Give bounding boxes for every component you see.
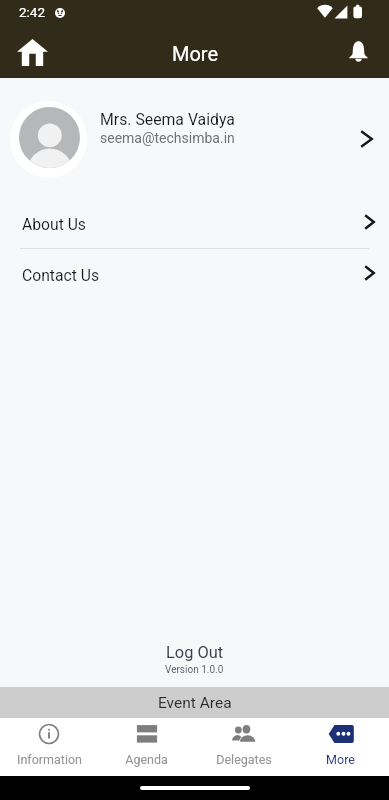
button[interactable]: Mrs. Seema Vaidya: [0, 78, 389, 198]
staticText: Version 1.0.0: [165, 664, 224, 676]
button[interactable]: Delegates: [195, 718, 292, 776]
staticText: Contact Us: [22, 266, 99, 284]
staticText: Delegates: [216, 752, 272, 767]
staticText: Mrs. Seema Vaidya: [100, 110, 235, 129]
staticText: Agenda: [125, 752, 168, 767]
button[interactable]: About Us: [0, 198, 389, 248]
staticText: More: [172, 42, 219, 65]
staticText: Log Out: [166, 643, 224, 662]
button[interactable]: Information: [0, 718, 98, 776]
button[interactable]: Home: [10, 31, 54, 75]
button[interactable]: More: [292, 718, 389, 776]
staticText: 2:42: [19, 4, 46, 20]
button[interactable]: Contact Us: [0, 249, 389, 299]
staticText: More: [326, 752, 355, 767]
staticText: Event Area: [158, 694, 232, 712]
button[interactable]: Notifications: [335, 31, 379, 75]
staticText: About Us: [22, 215, 86, 233]
staticText: seema@techsimba.in: [100, 130, 235, 146]
staticText: Information: [17, 752, 82, 767]
button[interactable]: Agenda: [98, 718, 195, 776]
button[interactable]: Log Out: [144, 637, 246, 662]
